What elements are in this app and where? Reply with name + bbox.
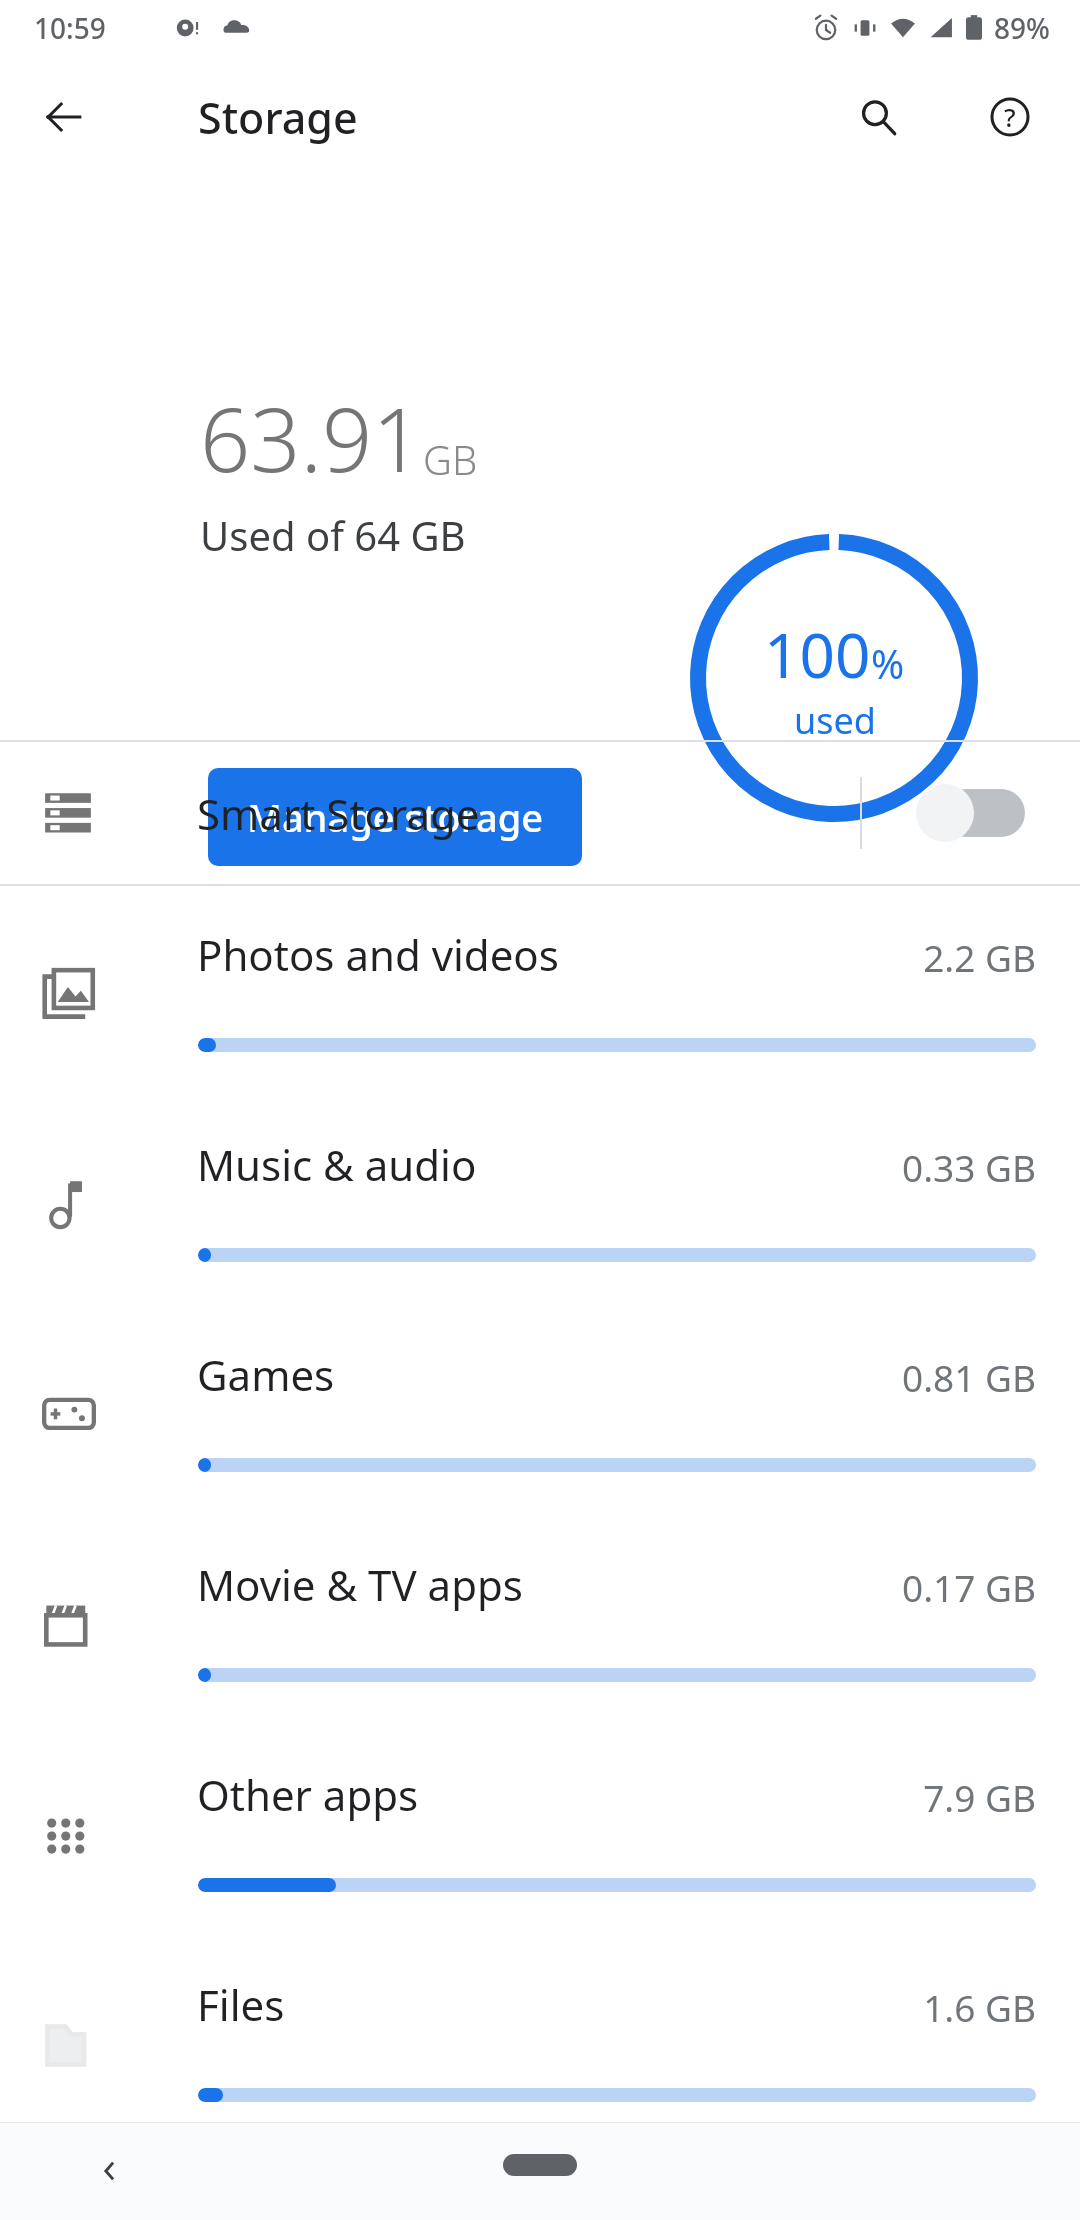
button[interactable]: Home xyxy=(503,2154,577,2176)
button[interactable]: Games xyxy=(0,1306,1080,1516)
staticText: Photos and videos xyxy=(197,926,559,983)
staticText: Other apps xyxy=(197,1766,419,1823)
staticText: 89% xyxy=(994,9,1050,47)
staticText: Smart Storage xyxy=(197,785,480,842)
staticText: Manage storage xyxy=(247,791,544,843)
staticText: 2.2 GB xyxy=(923,932,1036,982)
staticText: Used of 64 GB xyxy=(200,508,466,562)
staticText: 10:59 xyxy=(34,9,106,47)
staticText: 100 xyxy=(764,612,871,696)
staticText: Music & audio xyxy=(197,1136,477,1193)
button[interactable]: Files xyxy=(0,1936,1080,2146)
staticText: ? xyxy=(1004,99,1016,134)
button[interactable]: Manage storage xyxy=(208,768,582,866)
staticText: 0.17 GB xyxy=(901,1562,1036,1612)
button[interactable]: Navigate up xyxy=(22,75,106,159)
staticText: Movie & TV apps xyxy=(197,1556,523,1613)
button[interactable]: Movie & TV apps xyxy=(0,1516,1080,1726)
button[interactable]: Smart Storage xyxy=(0,742,1080,884)
staticText: Files xyxy=(197,1976,285,2033)
staticText: 1.6 GB xyxy=(923,1982,1036,2032)
staticText: 7.9 GB xyxy=(923,1772,1036,1822)
button[interactable]: Photos and videos xyxy=(0,886,1080,1096)
button[interactable]: Other apps xyxy=(0,1726,1080,1936)
staticText: % xyxy=(871,636,905,690)
button[interactable]: Smart Storage toggle xyxy=(914,768,1034,858)
staticText: GB xyxy=(423,432,478,486)
staticText: 0.81 GB xyxy=(901,1352,1036,1402)
staticText: used xyxy=(794,696,876,745)
button[interactable]: Search xyxy=(836,75,920,159)
staticText: Storage xyxy=(198,88,358,147)
button[interactable]: Back xyxy=(88,2149,132,2193)
button[interactable]: Help xyxy=(968,75,1052,159)
staticText: Games xyxy=(197,1346,335,1403)
staticText: 0.33 GB xyxy=(901,1142,1036,1192)
staticText: 63.91 xyxy=(200,378,423,498)
button[interactable]: Music & audio xyxy=(0,1096,1080,1306)
